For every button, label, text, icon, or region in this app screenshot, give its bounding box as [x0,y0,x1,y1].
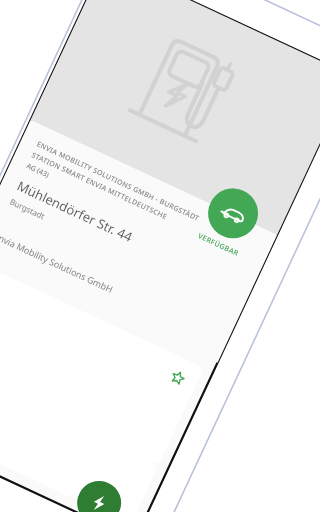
button[interactable]: Favorit [164,364,191,391]
staticText: Mühlendörfer Str. 44 [14,177,136,246]
button[interactable] [0,359,159,512]
staticText: AG (43) [25,161,51,180]
button[interactable]: Laden starten [70,474,128,512]
staticText: ENVIA MOBILITY SOLUTIONS GMBH - BURGSTÄD… [35,139,201,224]
staticText: envia Mobility Solutions GmbH [0,229,115,295]
staticText: STATION SMART ENVIA MITTELDEUTSCHE [30,150,169,222]
button[interactable]: Favorit [0,261,204,465]
staticText: VERFÜGBAR [196,231,240,259]
button[interactable]: Verfügbar [200,180,266,246]
staticText: Burgstadt [8,196,47,222]
